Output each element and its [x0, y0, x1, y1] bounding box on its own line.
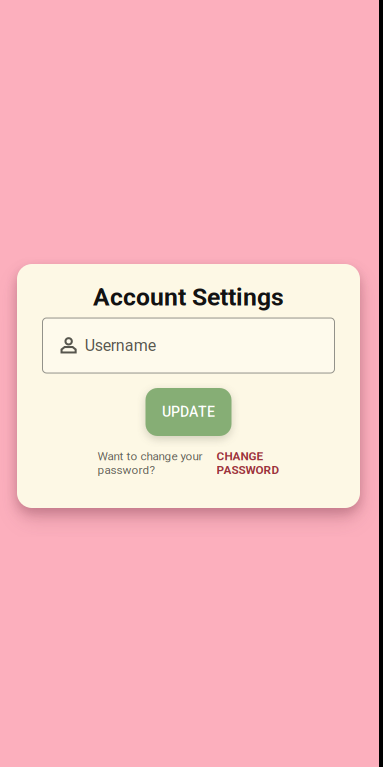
staticText: Username: [85, 336, 156, 355]
staticText: CHANGE PASSWORD: [216, 449, 279, 477]
button[interactable]: UPDATE: [145, 388, 231, 436]
staticText: UPDATE: [162, 404, 215, 420]
button[interactable]: Username: [42, 318, 334, 373]
staticText: Want to change your password?: [97, 449, 202, 477]
staticText: Account Settings: [93, 282, 284, 311]
button[interactable]: CHANGE PASSWORD: [216, 449, 279, 477]
